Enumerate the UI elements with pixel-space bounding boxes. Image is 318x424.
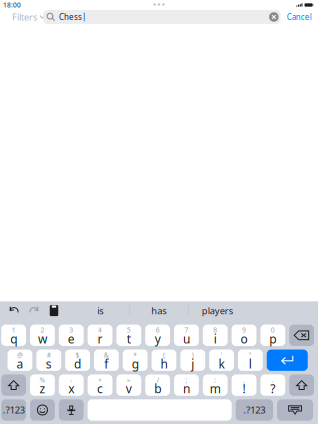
staticText: c [97,381,103,397]
button[interactable]: 6 [145,325,170,346]
staticText: ? [270,381,275,397]
staticText: k [219,356,225,372]
button[interactable]: Emoji [30,399,55,421]
staticText: b [154,381,161,397]
button[interactable]: 7 [174,325,199,346]
button[interactable]: Redo [24,303,44,319]
staticText: Cancel [287,12,312,22]
staticText: l [249,356,252,372]
button[interactable]: .?123 [236,399,273,421]
button[interactable]: % [30,374,55,396]
button[interactable]: ; [174,374,199,396]
button[interactable]: @ [7,349,32,371]
staticText: u [183,331,190,347]
staticText: . [272,375,274,384]
button[interactable]: is [71,301,129,320]
button[interactable]: Delete [289,325,314,346]
staticText: t [127,331,131,347]
staticText: is [97,304,103,317]
button[interactable]: Hide keyboard [277,399,313,421]
button[interactable]: * [123,349,147,371]
button[interactable]: Undo [4,303,24,319]
staticText: Chess [59,12,82,22]
staticText: @ [17,350,23,359]
button[interactable]: - [59,374,84,396]
staticText: Filters [12,11,37,23]
staticText: + [98,375,102,384]
button[interactable]: Shift [1,374,26,396]
staticText: - [70,375,72,384]
staticText: ( [163,350,165,359]
button[interactable]: 5 [116,325,141,346]
staticText: m [210,381,221,397]
button[interactable]: # [36,349,61,371]
staticText: * [133,350,137,359]
staticText: d [74,356,81,372]
button[interactable]: has [129,301,188,320]
button[interactable]: Return [267,349,308,371]
button[interactable]: Paste [44,303,64,319]
staticText: $ [75,350,79,359]
button[interactable]: 0 [260,325,285,346]
button[interactable]: = [116,374,141,396]
button[interactable]: 4 [88,325,112,346]
button[interactable]: : [203,374,228,396]
staticText: y [155,331,161,347]
staticText: s [46,356,52,372]
staticText: & [104,350,109,359]
button[interactable]: 1 [1,325,26,346]
button[interactable]: ( [151,349,176,371]
staticText: r [98,331,103,347]
staticText: e [68,331,75,347]
button[interactable]: .?123 [1,399,26,421]
button[interactable]: players [188,301,246,320]
staticText: 9 [242,326,246,334]
button[interactable]: " [238,349,263,371]
staticText: n [183,381,190,397]
button[interactable]: Clear search text [269,12,279,22]
staticText: o [241,331,248,347]
staticText: 0 [271,326,275,334]
staticText: , [243,375,245,384]
button[interactable]: Cancel [281,10,318,24]
button[interactable]: ' [209,349,234,371]
staticText: q [10,331,17,347]
staticText: = [127,375,131,384]
staticText: 2 [40,326,44,334]
staticText: players [202,304,233,317]
staticText: 18:00 [3,1,21,9]
button[interactable]: 9 [232,325,256,346]
staticText: has [151,304,166,317]
staticText: 3 [69,326,73,334]
staticText: % [39,375,45,384]
staticText: # [47,350,51,359]
button[interactable]: Shift [289,374,314,396]
staticText: : [214,375,216,384]
button[interactable]: ) [180,349,205,371]
button[interactable]: 8 [203,325,228,346]
button[interactable]: Space [88,399,232,421]
staticText: j [191,356,194,372]
button[interactable]: / [145,374,170,396]
button[interactable]: 2 [30,325,55,346]
staticText: ' [221,350,223,359]
button[interactable]: & [94,349,119,371]
staticText: v [126,381,132,397]
staticText: 7 [184,326,188,334]
staticText: 4 [98,326,102,334]
button[interactable]: 3 [59,325,84,346]
button[interactable]: , [232,374,256,396]
staticText: h [160,356,167,372]
staticText: ; [185,375,187,384]
staticText: x [68,381,74,397]
staticText: g [132,356,139,372]
button[interactable]: + [88,374,112,396]
staticText: f [104,356,108,372]
staticText: 5 [127,326,131,334]
button[interactable]: $ [65,349,90,371]
staticText: 6 [156,326,160,334]
staticText: 8 [213,326,217,334]
button[interactable]: Filters [12,10,37,24]
button[interactable]: Dictate [59,399,84,421]
button[interactable]: . [260,374,285,396]
